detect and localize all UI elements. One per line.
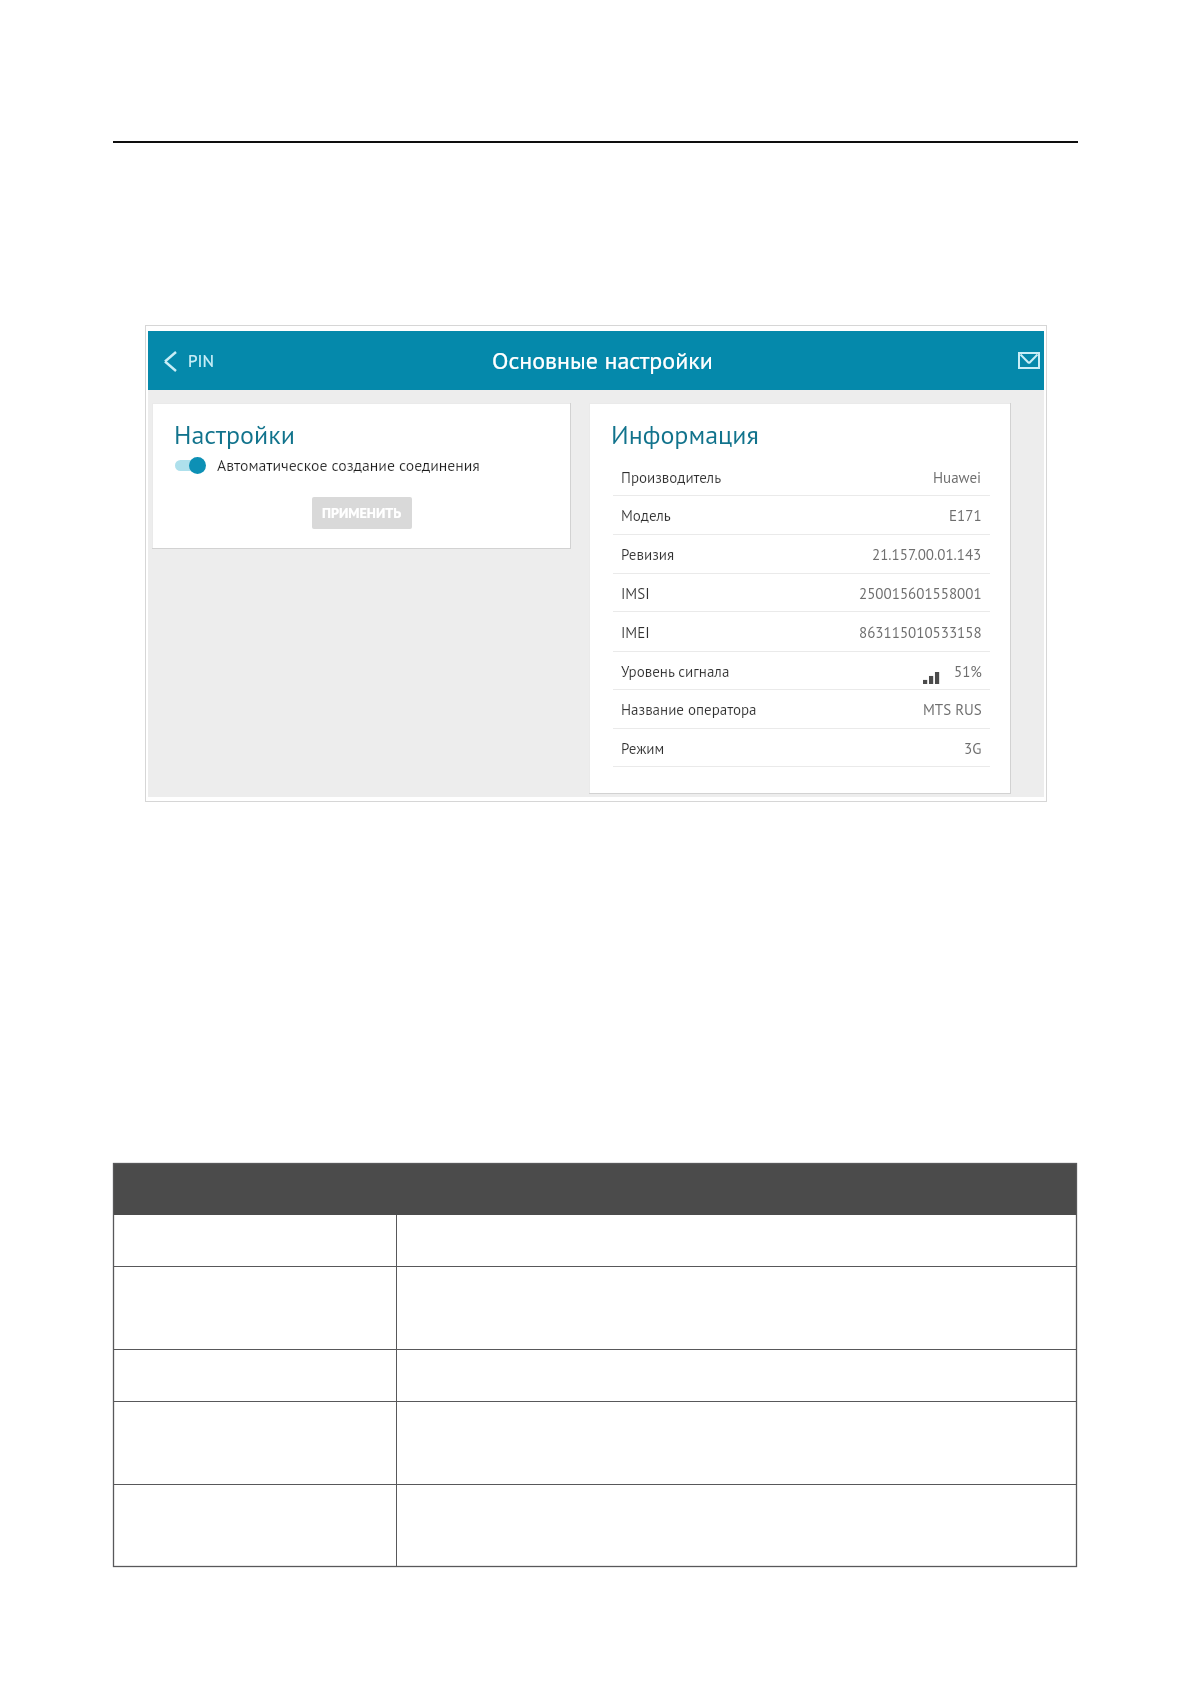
staticText: Автоматическое создание соединения bbox=[217, 455, 480, 475]
staticText: IMEI bbox=[621, 623, 650, 642]
staticText: Режим bbox=[621, 739, 665, 758]
staticText: 3G bbox=[964, 739, 982, 758]
staticText: 51% bbox=[954, 662, 982, 681]
button[interactable]: ПРИМЕНИТЬ bbox=[312, 497, 412, 529]
staticText: 863115010533158 bbox=[859, 623, 982, 642]
staticText: ПРИМЕНИТЬ bbox=[322, 504, 402, 522]
button[interactable]: Почта bbox=[1006, 340, 1044, 381]
staticText: Информация bbox=[611, 418, 759, 452]
staticText: E171 bbox=[949, 506, 982, 525]
staticText: Ревизия bbox=[621, 545, 675, 564]
staticText: 21.157.00.01.143 bbox=[872, 545, 982, 564]
staticText: PIN bbox=[188, 350, 214, 372]
staticText: Настройки bbox=[174, 418, 295, 452]
staticText: 250015601558001 bbox=[859, 584, 982, 603]
staticText: Основные настройки bbox=[492, 345, 713, 376]
button[interactable]: PIN bbox=[148, 340, 228, 382]
staticText: Уровень сигнала bbox=[621, 662, 730, 681]
staticText: IMSI bbox=[621, 584, 650, 603]
staticText: Производитель bbox=[621, 468, 722, 487]
staticText: Модель bbox=[621, 506, 671, 525]
button[interactable]: Автоматическое создание соединения bbox=[175, 452, 480, 478]
staticText: Huawei bbox=[933, 468, 982, 487]
staticText: Название оператора bbox=[621, 700, 757, 719]
staticText: MTS RUS bbox=[923, 700, 982, 719]
